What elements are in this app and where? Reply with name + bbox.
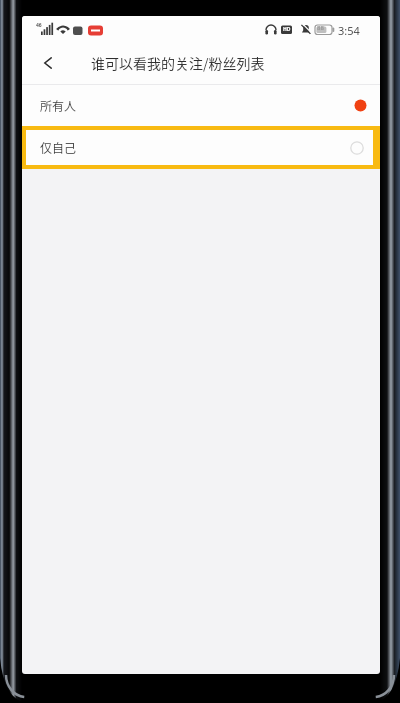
staticText: HD [283, 26, 291, 33]
button[interactable]: 仅自己 [26, 130, 373, 165]
staticText: 所有人 [40, 97, 77, 114]
button[interactable] [32, 47, 64, 79]
staticText: 88 [317, 24, 324, 32]
staticText: 3:54 [338, 23, 360, 38]
button[interactable]: 所有人 [22, 85, 380, 126]
staticText: 谁可以看我的关注/粉丝列表 [91, 53, 265, 73]
staticText: 46 [36, 22, 42, 29]
staticText: 仅自己 [40, 139, 77, 156]
